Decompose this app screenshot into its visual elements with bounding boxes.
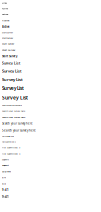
staticText: Survey List xyxy=(2,76,23,82)
staticText: Not Submitted: 3 xyxy=(2,152,20,155)
staticText: Start Survey xyxy=(2,54,17,58)
staticText: Not Submitted: 3 xyxy=(2,146,20,149)
staticText: Submit xyxy=(2,170,11,173)
staticText: 9:41 xyxy=(2,176,6,179)
staticText: 9:41 xyxy=(2,182,6,185)
staticText: Active xyxy=(2,19,9,22)
staticText: 9:41 xyxy=(2,188,9,192)
staticText: Start Survey xyxy=(2,48,15,51)
staticText: Start Survey xyxy=(2,42,14,45)
staticText: Survey List xyxy=(2,85,24,91)
staticText: Search your survey here xyxy=(2,104,22,106)
staticText: Submit xyxy=(2,158,9,161)
staticText: Survey List xyxy=(2,68,22,73)
staticText: Search your survey here xyxy=(2,122,33,125)
staticText: 9:41 xyxy=(2,195,9,199)
staticText: Survey List xyxy=(2,94,28,101)
staticText: Survey List xyxy=(2,61,20,65)
staticText: Submit xyxy=(2,164,9,167)
staticText: Active xyxy=(2,13,8,16)
staticText: Search your survey here xyxy=(2,110,25,112)
staticText: Not Submitted: 3 xyxy=(2,140,16,143)
staticText: Search your survey here xyxy=(2,128,36,132)
staticText: Search your survey here xyxy=(2,115,25,119)
staticText: Not Submitted: 3 xyxy=(2,135,14,138)
staticText: Start Survey xyxy=(2,31,13,34)
staticText: Start Survey xyxy=(2,37,13,39)
staticText: Active xyxy=(2,25,10,28)
